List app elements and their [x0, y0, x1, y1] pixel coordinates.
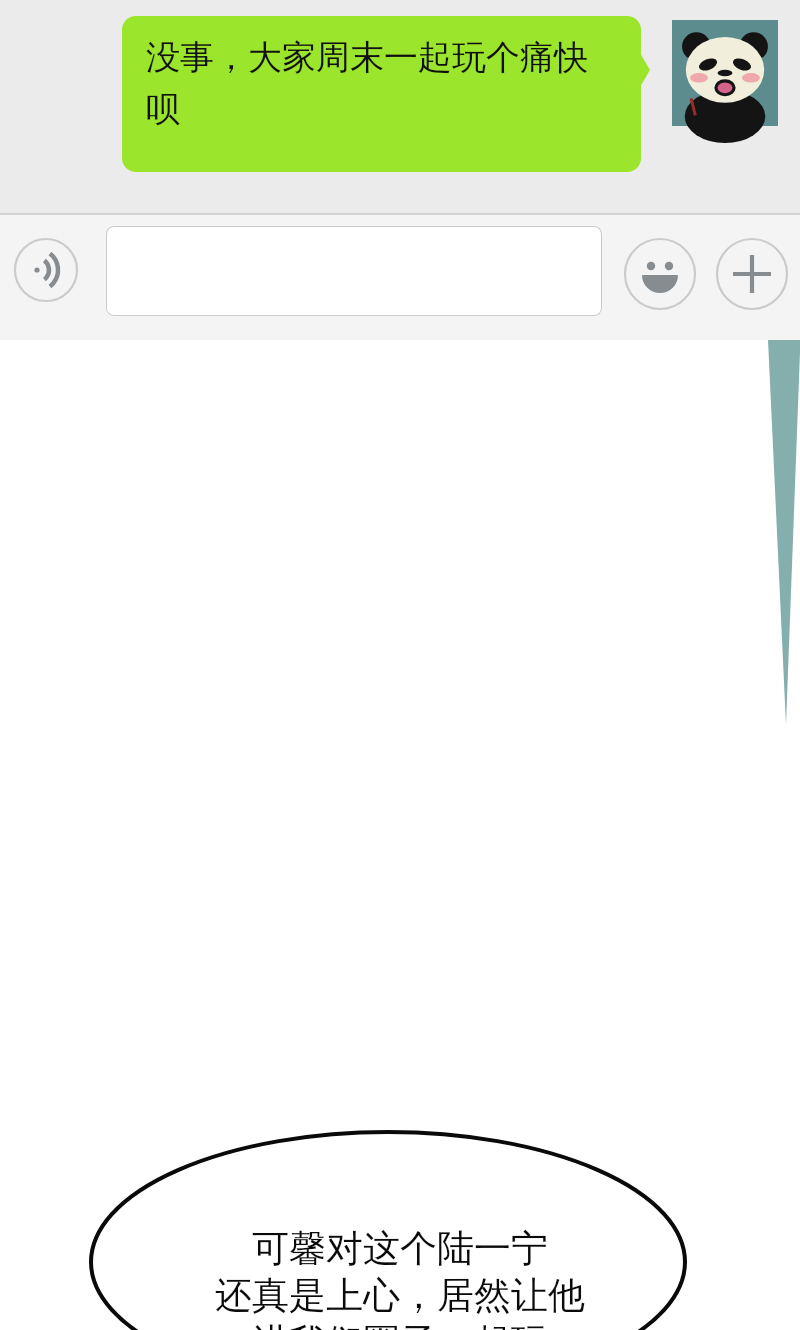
button[interactable]: 没事，大家周末一起玩个痛快呗 [122, 16, 648, 172]
button[interactable]: Voice input [14, 238, 78, 302]
staticText: 还真是上心，居然让他 [215, 1272, 585, 1319]
staticText: 进我们圈子一起玩 [252, 1319, 548, 1330]
button[interactable] [106, 226, 602, 316]
staticText: 没事，大家周末一起玩个痛快呗 [146, 36, 614, 131]
staticText: 可馨对这个陆一宁 [252, 1225, 548, 1272]
button[interactable]: More [716, 238, 788, 310]
button[interactable]: Avatar [672, 20, 778, 126]
button[interactable]: Emoji [624, 238, 696, 310]
